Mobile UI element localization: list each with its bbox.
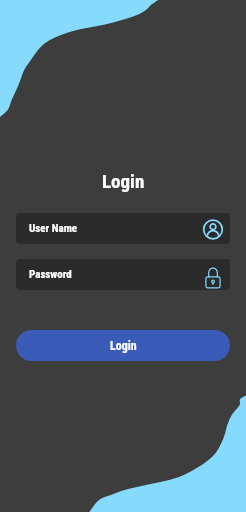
staticText: Login (102, 170, 145, 192)
staticText: User Name (29, 222, 78, 235)
other: Password (203, 265, 223, 285)
button[interactable]: Login (16, 330, 230, 361)
staticText: Login (110, 339, 137, 353)
other: User name (203, 219, 223, 239)
staticText: Password (29, 268, 72, 281)
button[interactable]: User Name (16, 213, 230, 244)
button[interactable]: Password (16, 259, 230, 290)
